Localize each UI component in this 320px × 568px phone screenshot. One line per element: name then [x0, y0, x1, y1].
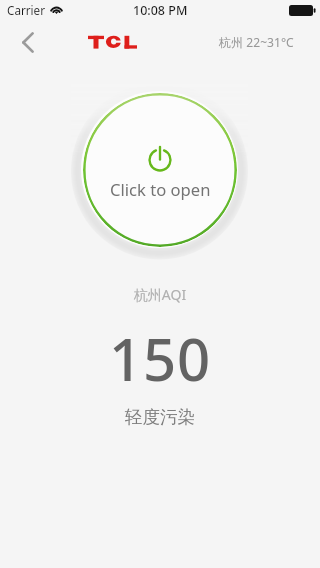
button[interactable]: Click to open	[83, 93, 237, 247]
staticText: Carrier	[7, 2, 46, 18]
staticText: 杭州 22~31°C	[219, 34, 294, 51]
staticText: 杭州AQI	[0, 285, 320, 304]
staticText: Click to open	[110, 178, 211, 201]
staticText: 150	[0, 319, 320, 398]
staticText: 10:08 PM	[133, 2, 188, 19]
button[interactable]: TCL	[88, 35, 138, 49]
button[interactable]: Back	[6, 20, 50, 64]
staticText: 轻度污染	[0, 406, 320, 428]
